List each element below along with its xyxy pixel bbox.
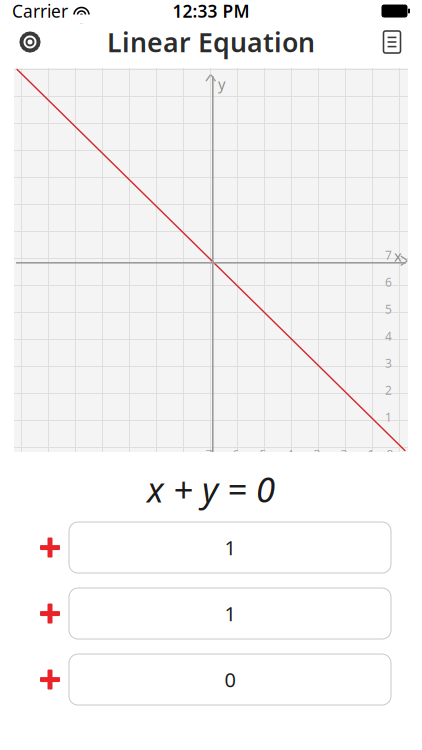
staticText: x + y = 0 (147, 466, 275, 512)
staticText: Linear Equation (107, 24, 315, 60)
staticText: -1 (363, 446, 374, 462)
button[interactable]: 1 (69, 522, 391, 573)
staticText: 0 (386, 446, 393, 462)
staticText: 1 (224, 600, 235, 627)
button[interactable]: Settings (8, 22, 52, 62)
staticText: -2 (336, 446, 347, 462)
staticText: 3 (385, 355, 392, 371)
staticText: -4 (282, 446, 293, 462)
button[interactable]: Notes (370, 22, 414, 62)
staticText: -6 (381, 598, 392, 614)
staticText: -5 (381, 571, 392, 587)
staticText: 5 (385, 301, 392, 317)
button[interactable]: 0 (69, 654, 391, 705)
staticText: x (394, 246, 402, 265)
staticText: 7 (385, 247, 392, 263)
button[interactable]: Change sign (31, 588, 69, 639)
staticText: -3 (381, 517, 392, 533)
staticText: 1 (224, 534, 235, 561)
staticText: -5 (255, 446, 266, 462)
staticText: 6 (385, 274, 392, 290)
staticText: Carrier (12, 0, 68, 22)
staticText: 2 (385, 382, 392, 398)
button[interactable]: Change sign (31, 522, 69, 573)
staticText: -7 (381, 625, 392, 641)
staticText: 4 (385, 328, 392, 344)
staticText: 0 (224, 666, 235, 693)
staticText: y (218, 74, 225, 93)
staticText: 12:33 PM (172, 0, 249, 22)
button[interactable]: 1 (69, 588, 391, 639)
staticText: -3 (309, 446, 320, 462)
staticText: -7 (201, 446, 212, 462)
button[interactable]: Change sign (31, 654, 69, 705)
staticText: 1 (385, 409, 392, 425)
staticText: -6 (228, 446, 239, 462)
staticText: -4 (381, 544, 392, 560)
